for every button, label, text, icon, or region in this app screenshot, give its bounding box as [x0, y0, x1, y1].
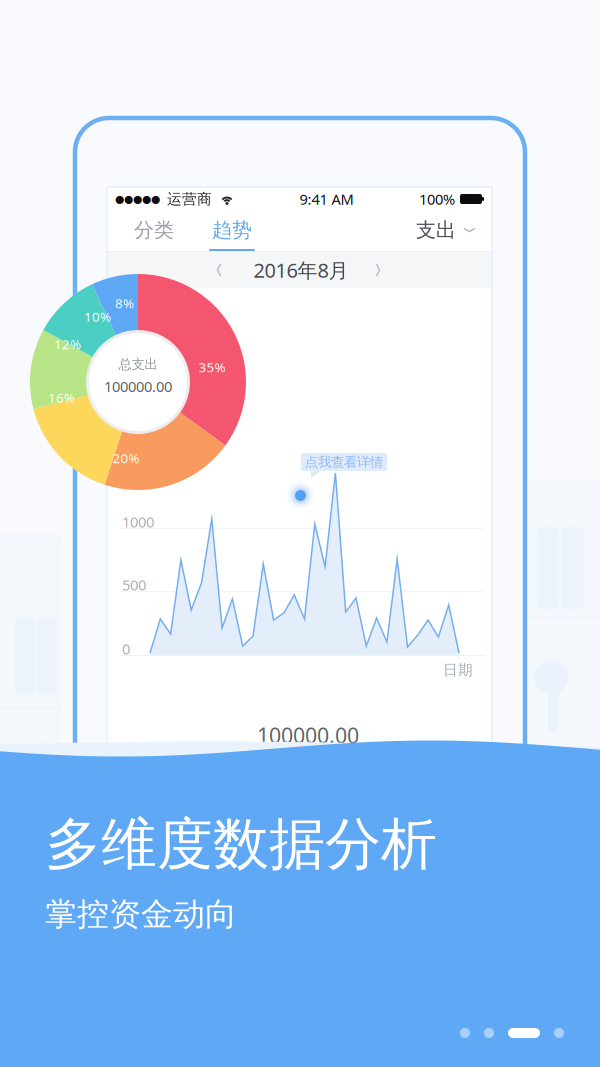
staticText: 8% [115, 294, 134, 312]
staticText: 趋势 [212, 218, 252, 242]
staticText: 20% [112, 449, 139, 467]
staticText: 2016年8月 [253, 257, 348, 283]
staticText: 1000 [122, 512, 154, 531]
staticText: 运营商 [167, 190, 212, 208]
staticText: 分类 [134, 218, 174, 242]
staticText: 100% [419, 189, 455, 209]
staticText: 0 [122, 639, 130, 658]
staticText: 100000.00 [257, 721, 359, 749]
button[interactable]: Next month [360, 252, 396, 288]
staticText: 支出 [416, 218, 456, 242]
button[interactable]: Previous month [201, 252, 237, 288]
staticText: 35% [198, 358, 225, 376]
button[interactable]: 支出 [410, 211, 481, 249]
staticText: ●●●●● [115, 193, 160, 205]
staticText: 总支出 [118, 356, 157, 372]
staticText: 500 [122, 575, 146, 594]
button[interactable]: 分类 [122, 211, 186, 249]
staticText: 9:41 AM [299, 189, 353, 209]
staticText: 10% [84, 308, 111, 325]
staticText: 点我查看详情 [305, 454, 383, 470]
staticText: 多维度数据分析 [45, 810, 437, 879]
staticText: 16% [48, 389, 75, 406]
staticText: 掌控资金动向 [45, 895, 237, 934]
staticText: 100000.00 [104, 376, 172, 396]
button[interactable]: 趋势 [200, 211, 264, 249]
button[interactable]: 点我查看详情 [301, 453, 387, 471]
staticText: 日期 [443, 661, 473, 679]
staticText: 12% [54, 335, 81, 353]
